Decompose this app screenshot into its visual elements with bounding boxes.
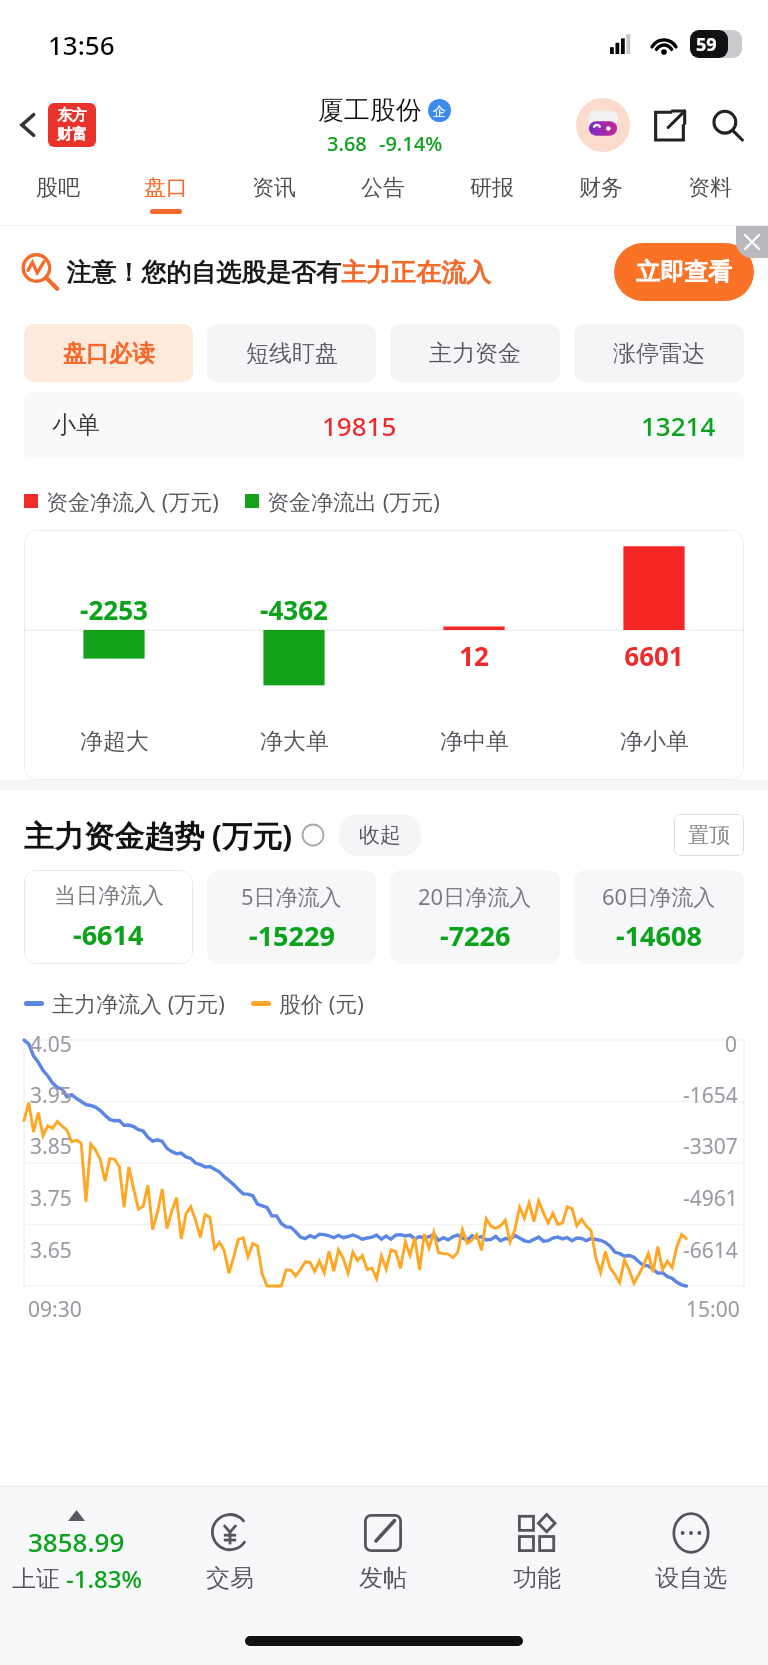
staticText: 发帖 [359, 1563, 407, 1593]
button[interactable]: 股吧 [4, 162, 112, 226]
staticText: 59 [696, 32, 717, 57]
staticText: 置顶 [688, 822, 730, 848]
button[interactable]: 20日净流入 [390, 870, 560, 964]
staticText: 19815 [322, 408, 397, 443]
staticText: 13214 [641, 408, 716, 443]
staticText: 资金净流入 (万元) [46, 486, 219, 516]
button[interactable]: 功能 [460, 1487, 614, 1617]
staticText: 3.85 [30, 1132, 72, 1161]
staticText: 09:30 [28, 1295, 82, 1324]
button[interactable]: 60日净流入 [574, 870, 744, 964]
staticText: 东方 [57, 106, 87, 125]
staticText: 主力资金趋势 (万元) [24, 815, 293, 856]
staticText: 厦工股份 [318, 94, 422, 127]
staticText: 6601 [624, 638, 684, 673]
staticText: 股价 (元) [279, 988, 364, 1018]
staticText: 60日净流入 [602, 881, 716, 911]
button[interactable]: AI assistant [576, 98, 630, 152]
staticText: 4.05 [30, 1030, 72, 1059]
staticText: 5日净流入 [241, 881, 342, 911]
staticText: -15229 [249, 917, 335, 954]
staticText: 财富 [57, 125, 87, 144]
staticText: 涨停雷达 [613, 339, 705, 368]
staticText: 12 [459, 638, 489, 673]
button[interactable]: 设自选 [614, 1487, 768, 1617]
staticText: 注意！您的自选股是否有 [66, 257, 341, 288]
staticText: 20日净流入 [418, 881, 532, 911]
staticText: -1.83% [66, 1562, 142, 1595]
button[interactable]: 资料 [655, 162, 764, 226]
button[interactable]: Help [301, 823, 325, 847]
button[interactable]: 资讯 [220, 162, 328, 226]
button[interactable]: 交易 [153, 1487, 306, 1617]
staticText: 3.75 [30, 1184, 72, 1213]
button[interactable]: 主力资金 [390, 324, 560, 382]
button[interactable]: 立即查看 [614, 243, 754, 301]
button[interactable]: 3858.99 [0, 1487, 153, 1617]
staticText: 净大单 [260, 727, 329, 756]
staticText: 收起 [359, 822, 401, 848]
staticText: 3858.99 [28, 1524, 125, 1559]
staticText: 企 [433, 103, 446, 119]
button[interactable]: 当日净流入 [24, 870, 193, 964]
staticText: -4961 [683, 1184, 738, 1213]
button[interactable]: 盘口 [112, 162, 220, 226]
staticText: -1654 [683, 1081, 738, 1110]
staticText: 上证 [12, 1564, 60, 1594]
staticText: 资料 [688, 174, 732, 202]
staticText: -7226 [440, 917, 511, 954]
staticText: -4362 [260, 592, 328, 627]
staticText: -9.14% [379, 130, 443, 157]
staticText: 净超大 [80, 727, 149, 756]
staticText: 3.65 [30, 1236, 72, 1265]
staticText: 当日净流入 [54, 882, 164, 910]
staticText: -3307 [683, 1132, 738, 1161]
staticText: 立即查看 [636, 257, 732, 287]
staticText: 财务 [579, 174, 623, 202]
staticText: 13:56 [48, 27, 115, 62]
staticText: 盘口必读 [63, 339, 155, 368]
staticText: 0 [725, 1030, 738, 1059]
staticText: 资讯 [252, 174, 296, 202]
staticText: -6614 [683, 1236, 738, 1265]
button[interactable]: 置顶 [674, 814, 744, 856]
staticText: 交易 [206, 1563, 254, 1593]
button[interactable]: 盘口必读 [24, 324, 193, 382]
button[interactable]: 公告 [328, 162, 437, 226]
staticText: -14608 [616, 917, 702, 954]
staticText: -2253 [80, 592, 148, 627]
staticText: 主力资金 [429, 339, 521, 368]
button[interactable]: Share [646, 102, 692, 148]
staticText: 主力正在流入 [341, 257, 491, 288]
staticText: 功能 [513, 1563, 561, 1593]
button[interactable]: 涨停雷达 [574, 324, 744, 382]
button[interactable]: Search [704, 102, 750, 148]
staticText: -6614 [73, 916, 144, 953]
staticText: 3.68 [327, 130, 367, 157]
staticText: 净小单 [620, 727, 689, 756]
button[interactable]: 收起 [339, 814, 421, 856]
staticText: 公告 [361, 174, 405, 202]
button[interactable]: Back [10, 97, 104, 153]
staticText: 设自选 [655, 1563, 727, 1593]
button[interactable]: 小单 [24, 392, 744, 458]
staticText: 主力净流入 (万元) [52, 988, 225, 1018]
staticText: 盘口 [144, 174, 188, 202]
staticText: 净中单 [440, 727, 509, 756]
staticText: 股吧 [36, 174, 80, 202]
staticText: 小单 [52, 410, 100, 440]
staticText: 15:00 [686, 1295, 740, 1324]
staticText: 研报 [470, 174, 514, 202]
button[interactable]: Close [736, 226, 768, 258]
button[interactable]: 研报 [437, 162, 546, 226]
staticText: 资金净流出 (万元) [267, 486, 440, 516]
button[interactable]: 发帖 [306, 1487, 460, 1617]
button[interactable]: 财务 [546, 162, 655, 226]
staticText: 3.95 [30, 1081, 72, 1110]
staticText: 短线盯盘 [246, 339, 338, 368]
button[interactable]: 短线盯盘 [207, 324, 376, 382]
button[interactable]: 5日净流入 [207, 870, 376, 964]
